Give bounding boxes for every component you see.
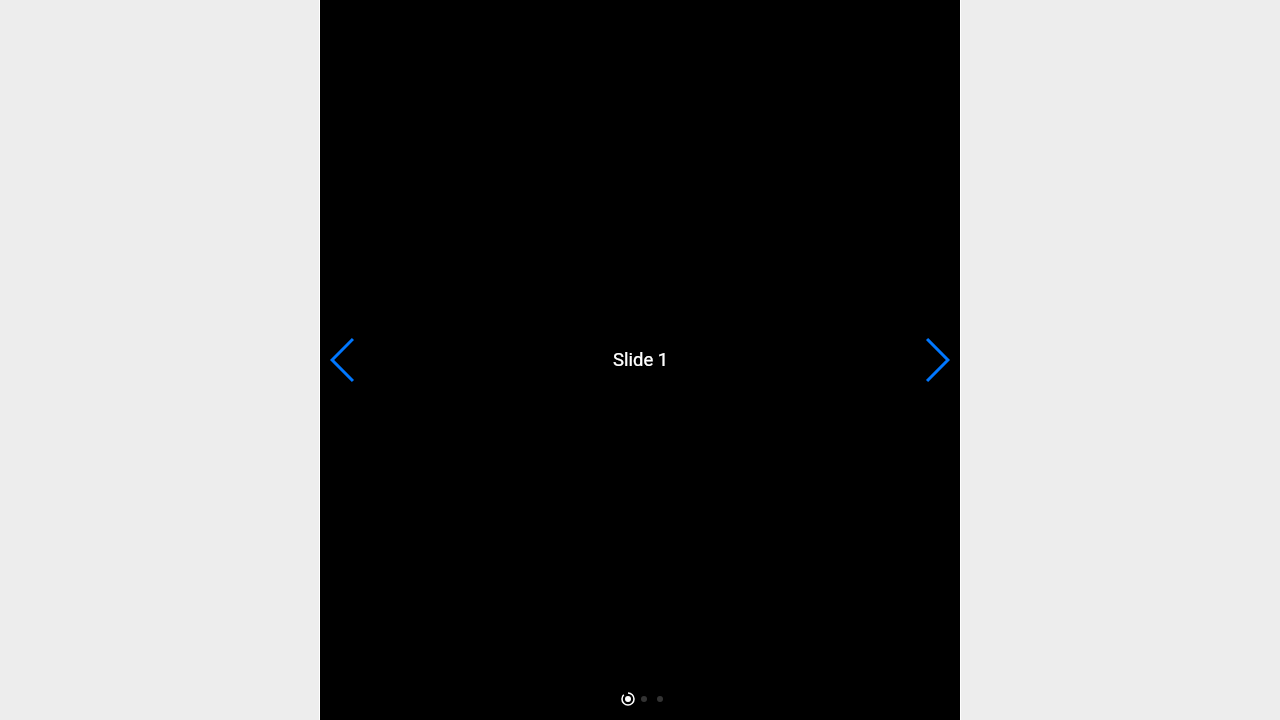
button[interactable]: Go to slide 2: [636, 691, 652, 707]
button[interactable]: Previous slide: [320, 338, 364, 382]
button[interactable]: Go to slide 3: [652, 691, 668, 707]
staticText: Slide 1: [613, 349, 669, 371]
button[interactable]: Next slide: [916, 338, 960, 382]
button[interactable]: Go to slide 1: [620, 691, 636, 707]
